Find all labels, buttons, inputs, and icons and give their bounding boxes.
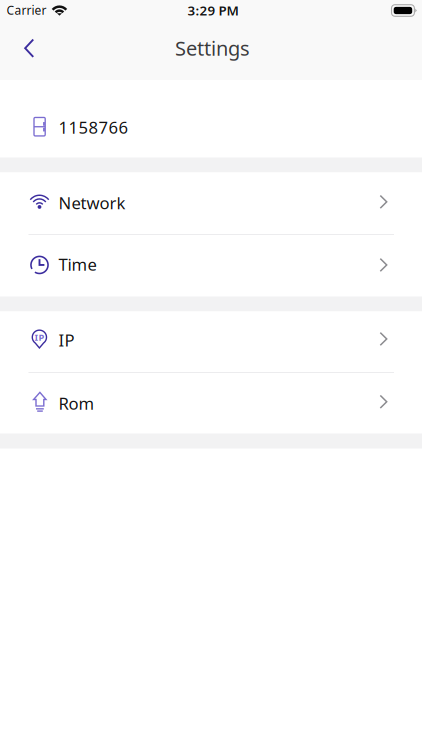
staticText: Network (58, 191, 125, 214)
button[interactable]: Rom (0, 373, 422, 433)
staticText: IP (58, 329, 74, 351)
button[interactable]: Network (0, 172, 422, 234)
staticText: Rom (58, 392, 94, 414)
button[interactable]: 1158766 (0, 96, 422, 157)
button[interactable]: IP (0, 311, 422, 372)
button[interactable]: Back (0, 28, 44, 72)
staticText: 3:29 PM (187, 1, 238, 19)
staticText: Time (58, 253, 96, 276)
staticText: 1158766 (58, 116, 128, 139)
button[interactable]: Time (0, 235, 422, 296)
staticText: Carrier (6, 2, 46, 18)
staticText: Settings (175, 34, 250, 62)
staticText: IP (35, 331, 45, 343)
